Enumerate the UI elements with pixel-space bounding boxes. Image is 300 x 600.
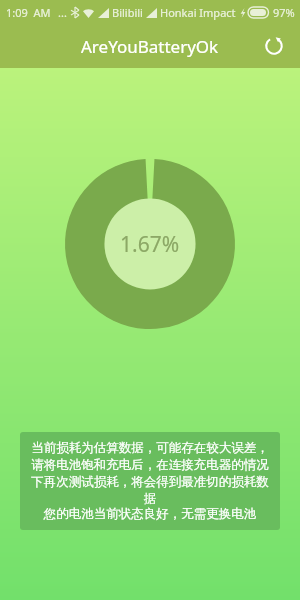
- staticText: Bilibili: [112, 5, 143, 20]
- staticText: 97%: [273, 5, 295, 20]
- staticText: 1:09 AM: [6, 5, 51, 20]
- staticText: 1.67%: [120, 230, 180, 259]
- staticText: 您的电池当前状态良好，无需更换电池: [26, 506, 274, 522]
- button[interactable]: Refresh: [258, 30, 290, 62]
- staticText: 当前损耗为估算数据，可能存在较大误差，请将电池饱和充电后，在连接充电器的情况下再…: [26, 440, 274, 506]
- staticText: ...: [58, 5, 67, 20]
- button[interactable]: 当前损耗为估算数据，可能存在较大误差，请将电池饱和充电后，在连接充电器的情况下再…: [20, 432, 280, 530]
- staticText: Honkai Impact: [160, 5, 236, 20]
- staticText: AreYouBatteryOk: [81, 35, 219, 58]
